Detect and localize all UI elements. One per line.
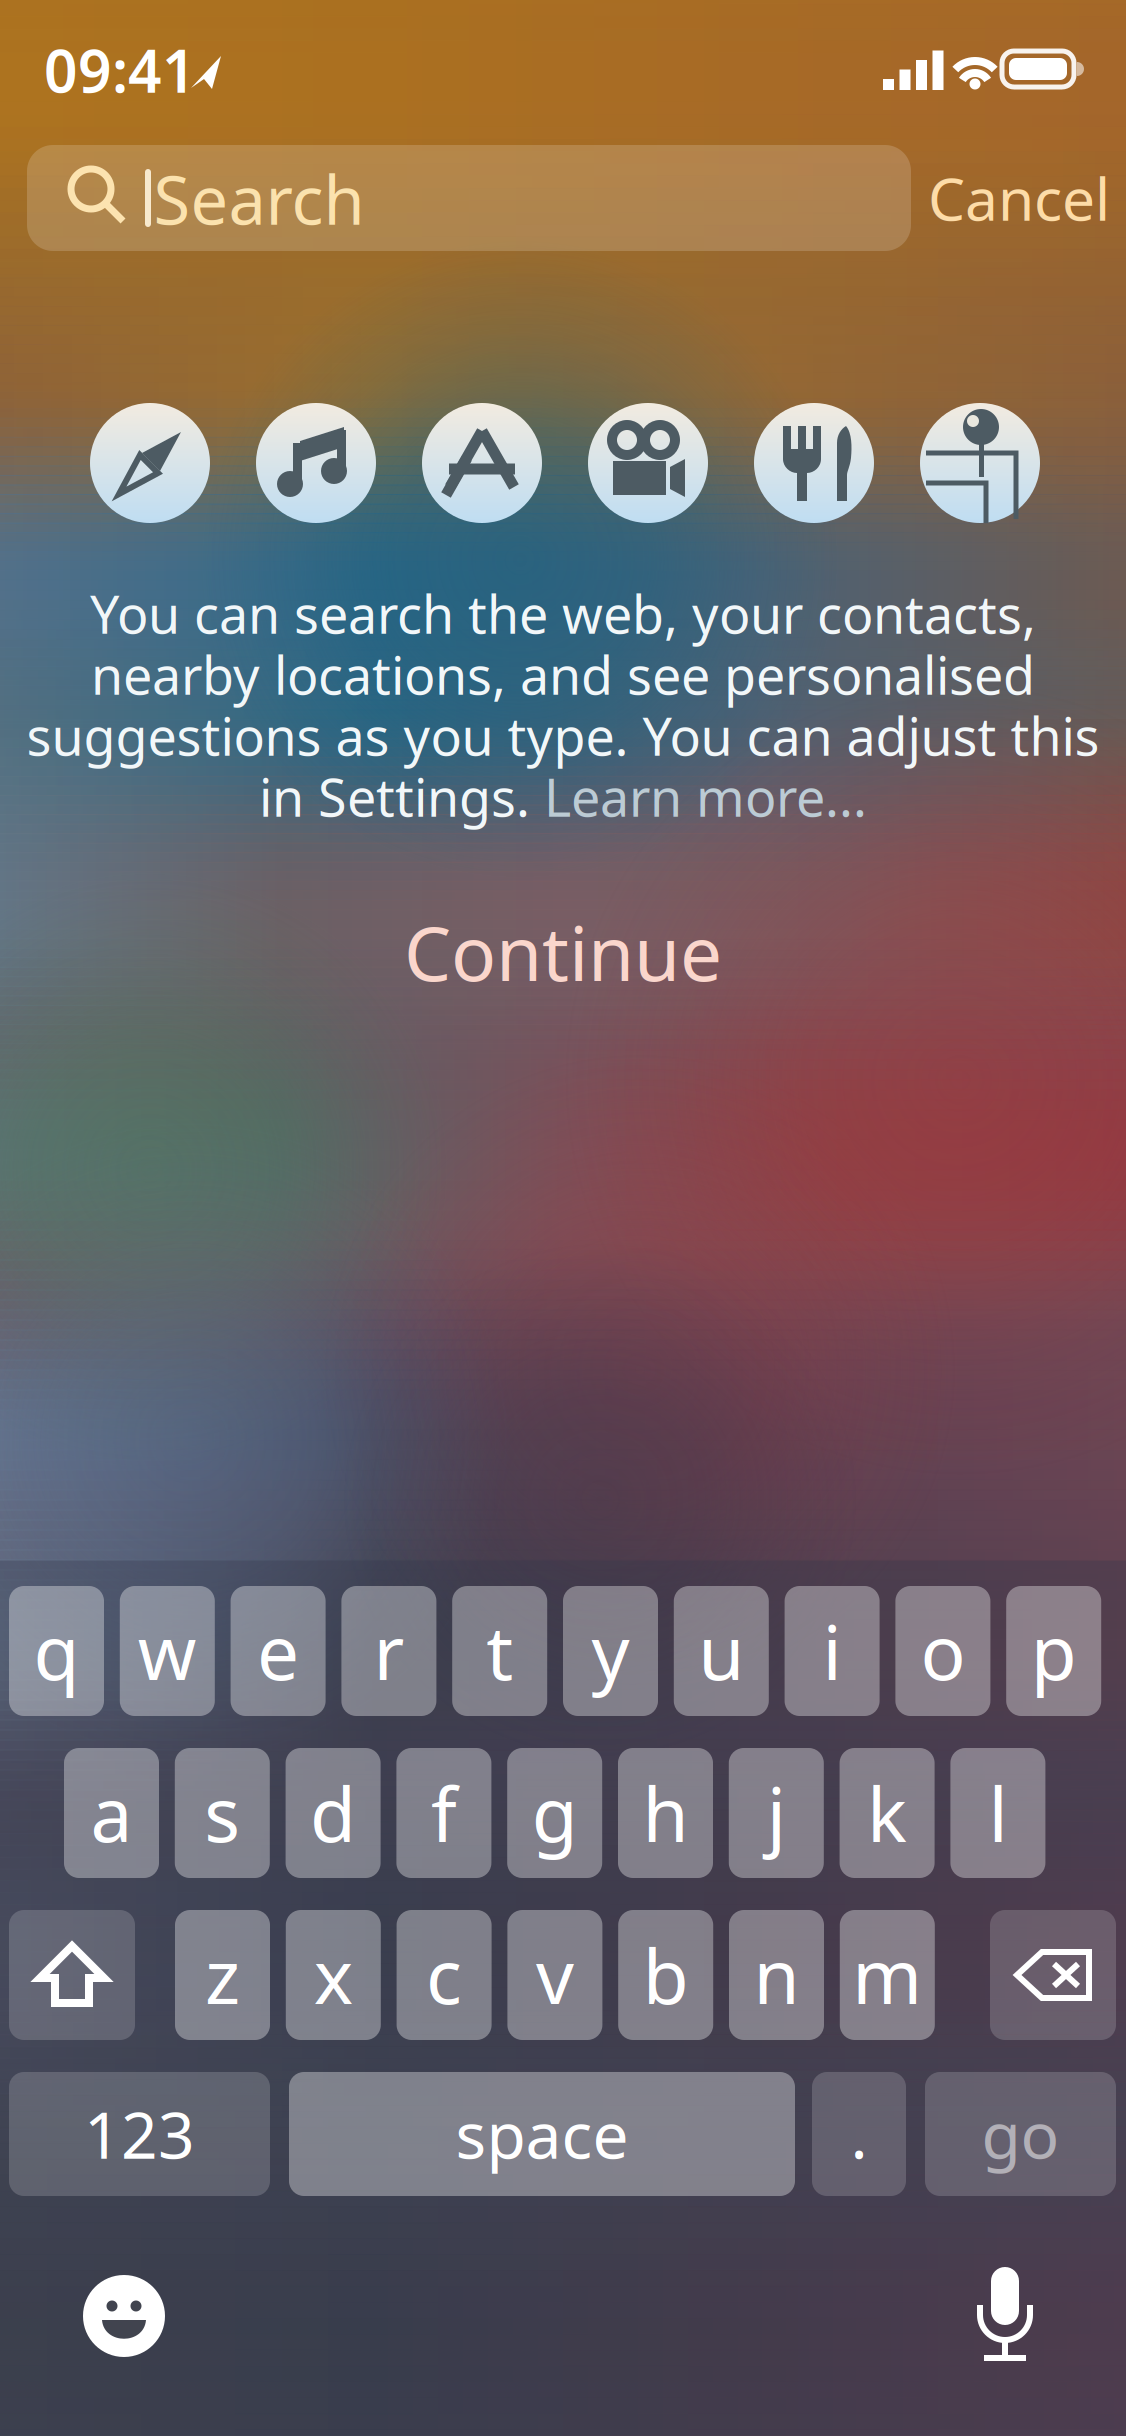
staticText: Learn more... — [544, 762, 867, 831]
button[interactable]: l — [950, 1748, 1045, 1878]
staticText: space — [455, 2091, 628, 2176]
staticText: 09:41 — [44, 31, 196, 109]
staticText: m — [852, 1925, 922, 2025]
staticText: r — [373, 1601, 404, 1701]
staticText: h — [642, 1763, 688, 1863]
staticText: Cancel — [928, 159, 1110, 237]
button[interactable]: . — [812, 2072, 906, 2196]
button[interactable]: Cancel — [909, 145, 1126, 251]
staticText: a — [90, 1763, 132, 1863]
button[interactable]: j — [729, 1748, 824, 1878]
button[interactable]: m — [840, 1910, 935, 2040]
button[interactable]: x — [286, 1910, 381, 2040]
staticText: n — [753, 1925, 799, 2025]
button[interactable]: r — [341, 1586, 436, 1716]
staticText: b — [643, 1925, 689, 2025]
button[interactable]: t — [452, 1586, 547, 1716]
staticText: y — [591, 1601, 629, 1701]
staticText: t — [486, 1601, 513, 1701]
staticText: o — [920, 1601, 965, 1701]
button[interactable]: 123 — [9, 2072, 270, 2196]
staticText: e — [257, 1601, 299, 1701]
staticText: k — [867, 1763, 907, 1863]
staticText: nearby locations, and see personalised — [91, 640, 1035, 709]
button[interactable]: q — [9, 1586, 104, 1716]
button[interactable]: space — [289, 2072, 795, 2196]
button[interactable]: b — [618, 1910, 713, 2040]
button[interactable]: u — [674, 1586, 769, 1716]
button[interactable]: v — [507, 1910, 602, 2040]
button[interactable]: o — [895, 1586, 990, 1716]
staticText: i — [823, 1601, 842, 1701]
staticText: 123 — [84, 2091, 195, 2176]
button[interactable]: s — [175, 1748, 270, 1878]
button[interactable]: Learn more... — [544, 762, 867, 831]
staticText: Continue — [404, 902, 722, 1002]
button[interactable]: Shift — [9, 1910, 135, 2040]
button[interactable]: a — [64, 1748, 159, 1878]
button[interactable]: g — [507, 1748, 602, 1878]
staticText: p — [1031, 1601, 1077, 1701]
button[interactable]: c — [397, 1910, 492, 2040]
staticText: q — [33, 1601, 79, 1701]
button[interactable]: k — [840, 1748, 935, 1878]
staticText: d — [310, 1763, 356, 1863]
button[interactable]: y — [563, 1586, 658, 1716]
button[interactable]: i — [785, 1586, 880, 1716]
staticText: suggestions as you type. You can adjust … — [26, 701, 1099, 770]
staticText: g — [532, 1763, 578, 1863]
staticText: v — [536, 1925, 574, 2025]
button[interactable]: Search — [27, 145, 911, 251]
staticText: j — [767, 1763, 786, 1863]
button[interactable]: z — [175, 1910, 270, 2040]
button[interactable]: d — [286, 1748, 381, 1878]
staticText: x — [314, 1925, 353, 2025]
button[interactable]: Delete — [990, 1910, 1116, 2040]
button[interactable]: Emoji — [83, 2275, 165, 2357]
staticText: . — [850, 2091, 867, 2176]
button[interactable]: f — [396, 1748, 491, 1878]
button[interactable]: p — [1006, 1586, 1101, 1716]
staticText: in Settings. — [259, 762, 544, 831]
button[interactable]: w — [120, 1586, 215, 1716]
staticText: f — [431, 1763, 457, 1863]
staticText: l — [988, 1763, 1007, 1863]
staticText: go — [981, 2091, 1059, 2176]
staticText: Search — [153, 155, 364, 243]
staticText: s — [204, 1763, 240, 1863]
staticText: u — [698, 1601, 744, 1701]
button[interactable]: e — [231, 1586, 326, 1716]
button[interactable]: h — [618, 1748, 713, 1878]
staticText: z — [205, 1925, 240, 2025]
button[interactable]: go — [925, 2072, 1116, 2196]
staticText: You can search the web, your contacts, — [90, 579, 1036, 648]
button[interactable]: n — [729, 1910, 824, 2040]
staticText: c — [426, 1925, 462, 2025]
staticText: w — [138, 1601, 197, 1701]
button[interactable]: Continue — [363, 906, 763, 998]
button[interactable]: Dictation — [962, 2263, 1048, 2367]
